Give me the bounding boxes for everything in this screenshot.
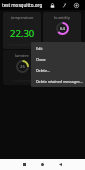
staticText: Edit	[36, 46, 43, 51]
button[interactable]: Delete...	[31, 65, 85, 76]
staticText: Clone	[36, 57, 46, 62]
staticText: Delete...	[36, 68, 50, 73]
staticText: temperature	[11, 15, 34, 20]
button[interactable]: Home	[37, 159, 47, 170]
button[interactable]: Back	[55, 159, 65, 170]
staticText: test/temperature	[9, 43, 35, 47]
staticText: 22.30	[10, 27, 35, 40]
button[interactable]: temperature	[3, 12, 41, 49]
button[interactable]: Add	[71, 0, 81, 10]
staticText: Delete retained messages...	[36, 79, 83, 84]
staticText: 26	[20, 64, 25, 70]
staticText: test/lumiere	[13, 79, 32, 83]
button[interactable]: Disconnect	[59, 0, 69, 10]
button[interactable]: Clone	[31, 54, 85, 65]
button[interactable]: lumiere	[3, 50, 41, 85]
button[interactable]: Edit	[31, 43, 85, 54]
staticText: test mosquitto.org	[2, 2, 43, 8]
staticText: 64	[60, 26, 65, 32]
button[interactable]: Recent apps	[19, 159, 29, 170]
button[interactable]: Delete retained messages...	[31, 76, 85, 87]
button[interactable]: Secure connection	[47, 0, 57, 10]
staticText: lumiere	[15, 53, 29, 58]
button[interactable]: humidity	[43, 12, 81, 49]
staticText: humidity	[54, 15, 70, 20]
